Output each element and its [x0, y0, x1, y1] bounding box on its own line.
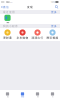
staticText: 更多 [51, 24, 57, 28]
staticText: 通讯录 [21, 96, 24, 98]
button[interactable]: 理财通 [0, 29, 15, 40]
button[interactable]: 通讯录 [15, 90, 30, 100]
staticText: 微信 [3, 5, 9, 9]
button[interactable]: 发现 [30, 90, 45, 100]
button[interactable]: 更多 [51, 24, 57, 28]
staticText: 中国移动 [6, 1, 10, 3]
button[interactable]: 小程序 [0, 15, 15, 23]
staticText: 100% [51, 1, 55, 3]
staticText: 发现 [36, 96, 38, 98]
staticText: 我的小程序 [3, 24, 18, 28]
button[interactable]: 更多 [51, 10, 57, 14]
button[interactable]: 我 [45, 90, 60, 100]
staticText: 滴滴出行 [31, 36, 43, 40]
staticText: 发现 [27, 5, 33, 9]
button[interactable]: Search [53, 4, 60, 10]
staticText: 微信 [6, 96, 8, 98]
staticText: 9:41 [10, 1, 13, 3]
staticText: 腾讯视频 [46, 36, 58, 40]
staticText: 最近使用 [3, 10, 15, 14]
staticText: 我 [52, 96, 53, 98]
button[interactable]: 腾讯视频 [45, 29, 60, 40]
button[interactable]: 滴滴出行 [30, 29, 45, 40]
button[interactable]: 微信 [0, 4, 10, 10]
button[interactable]: 微信 [0, 90, 15, 100]
staticText: 京东购物 [16, 36, 28, 40]
staticText: 小程序 [6, 22, 9, 23]
staticText: 理财通 [3, 36, 12, 40]
button[interactable]: 京东购物 [15, 29, 30, 40]
staticText: 更多 [51, 10, 57, 14]
